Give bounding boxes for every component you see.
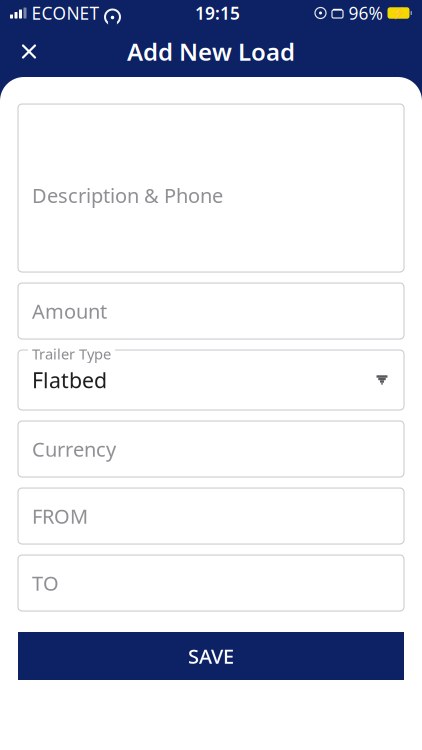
staticText: TO <box>32 570 59 596</box>
staticText: Flatbed <box>32 366 107 394</box>
button[interactable]: FROM <box>18 488 404 544</box>
button[interactable]: TO <box>18 555 404 611</box>
staticText: Add New Load <box>127 36 295 67</box>
button[interactable]: SAVE <box>18 632 404 680</box>
button[interactable]: Currency <box>18 421 404 477</box>
staticText: 96% <box>348 1 382 24</box>
staticText: Currency <box>32 436 116 462</box>
staticText: Description & Phone <box>32 182 223 209</box>
button[interactable]: Close <box>0 28 40 74</box>
staticText: Trailer Type <box>32 344 111 363</box>
staticText: Amount <box>32 298 107 324</box>
button[interactable]: Flatbed <box>18 350 404 410</box>
staticText: FROM <box>32 503 88 529</box>
staticText: ECONET <box>31 1 99 24</box>
button[interactable]: Amount <box>18 283 404 339</box>
staticText: 19:15 <box>195 1 240 24</box>
staticText: ⚡ <box>392 7 405 19</box>
staticText: SAVE <box>188 643 234 669</box>
button[interactable]: Description & Phone <box>18 104 404 272</box>
